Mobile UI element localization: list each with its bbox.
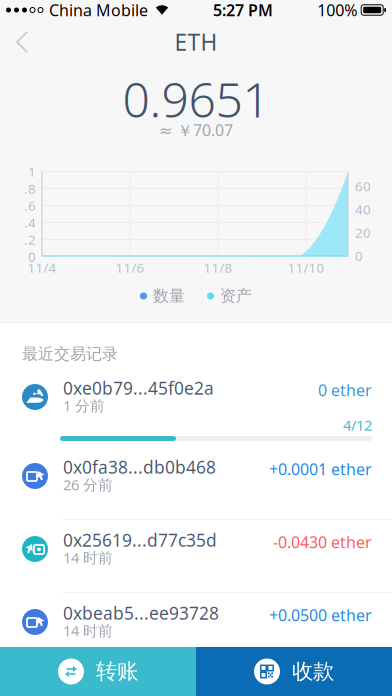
- staticText: 14 时前: [63, 548, 113, 567]
- staticText: 5:27 PM: [213, 0, 273, 21]
- staticText: China Mobile: [49, 0, 148, 21]
- staticText: 0x0fa38...db0b468: [63, 455, 216, 478]
- staticText: 0x25619...d77c35d: [63, 528, 217, 551]
- button[interactable]: 0x25619...d77c35d: [0, 520, 392, 592]
- staticText: 0xbeab5...ee93728: [63, 601, 219, 624]
- button[interactable]: 0xe0b79...45f0e2a: [0, 368, 392, 447]
- button[interactable]: 转账: [0, 647, 196, 696]
- staticText: ≈ ￥70.07: [159, 119, 233, 141]
- staticText: 26 分前: [63, 475, 113, 494]
- staticText: 0 ether: [318, 379, 372, 401]
- staticText: 最近交易记录: [22, 344, 118, 364]
- staticText: +0.0001 ether: [269, 458, 372, 480]
- staticText: 20: [355, 224, 371, 241]
- staticText: 14 时前: [63, 621, 113, 640]
- button[interactable]: 0x0fa38...db0b468: [0, 447, 392, 519]
- button[interactable]: 收款: [196, 647, 392, 696]
- staticText: 60: [355, 177, 371, 195]
- staticText: 0.9651: [122, 67, 269, 131]
- staticText: ETH: [174, 27, 217, 57]
- staticText: 100%: [317, 0, 357, 21]
- staticText: 4/12: [343, 415, 372, 435]
- staticText: 11/10: [287, 259, 324, 276]
- staticText: 数量: [153, 286, 185, 306]
- button[interactable]: Back: [0, 20, 42, 64]
- staticText: 0: [28, 248, 36, 265]
- staticText: 11/8: [203, 259, 232, 276]
- staticText: 1: [28, 163, 36, 180]
- staticText: +0.0500 ether: [269, 604, 372, 626]
- staticText: .4: [24, 214, 36, 231]
- staticText: 1 分前: [63, 396, 105, 415]
- staticText: 0xe0b79...45f0e2a: [63, 376, 214, 399]
- staticText: 资产: [220, 286, 252, 306]
- staticText: .6: [24, 197, 36, 214]
- staticText: .2: [24, 231, 36, 248]
- staticText: 0: [355, 247, 363, 265]
- button[interactable]: 0xbeab5...ee93728: [0, 593, 392, 665]
- staticText: -0.0430 ether: [273, 531, 372, 553]
- staticText: 11/4: [27, 259, 56, 276]
- staticText: 收款: [292, 658, 334, 685]
- staticText: .8: [24, 180, 36, 197]
- staticText: 转账: [96, 658, 138, 685]
- staticText: 11/6: [115, 259, 144, 276]
- staticText: 40: [355, 200, 371, 218]
